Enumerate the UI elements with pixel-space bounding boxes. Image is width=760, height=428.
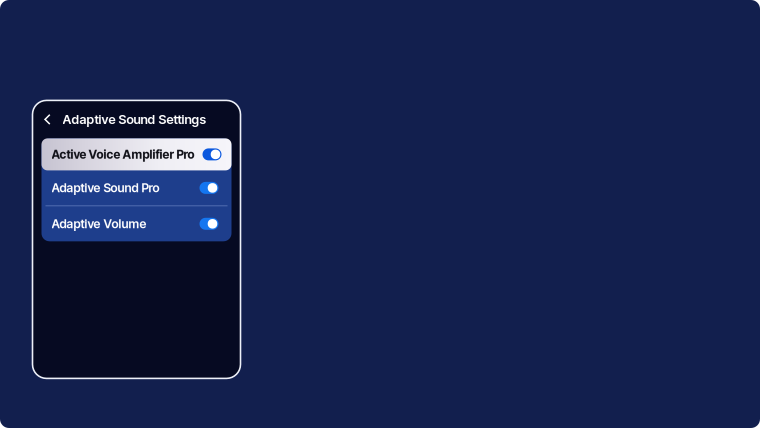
staticText: Adaptive Sound Settings [63, 112, 207, 127]
staticText: Adaptive Volume [51, 216, 146, 231]
button[interactable]: Adaptive Sound Pro [41, 170, 231, 205]
button[interactable]: Adaptive Volume [41, 206, 231, 241]
staticText: Adaptive Sound Pro [51, 180, 159, 195]
button[interactable]: Active Voice Amplifier Pro [41, 138, 231, 170]
button[interactable]: Back [41, 108, 54, 130]
staticText: Active Voice Amplifier Pro [51, 147, 194, 162]
